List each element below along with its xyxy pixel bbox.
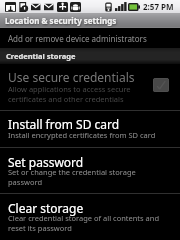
staticText: Set password — [8, 154, 84, 170]
button[interactable]: Set password — [0, 148, 180, 193]
staticText: Install encrypted certificates from SD c… — [8, 130, 156, 140]
staticText: Credential storage — [6, 51, 76, 61]
button[interactable]: Use secure credentials — [0, 64, 180, 110]
button[interactable]: Install from SD card — [0, 111, 180, 147]
staticText: Install from SD card — [8, 116, 120, 132]
staticText: Add or remove device administrators — [8, 33, 147, 44]
staticText: Allow applications to access secure cert… — [8, 84, 131, 104]
staticText: Location & security settings — [5, 15, 117, 26]
staticText: Set or change the credential storage pas… — [8, 167, 136, 187]
staticText: Clear storage — [8, 200, 84, 216]
button[interactable]: Clear storage — [0, 194, 180, 240]
staticText: 2:57 PM — [143, 1, 174, 12]
staticText: Use secure credentials — [8, 69, 135, 85]
button[interactable]: Add or remove device administrators — [0, 28, 180, 48]
other: Use secure credentials — [153, 78, 169, 92]
staticText: Clear credential storage of all contents… — [8, 213, 160, 233]
